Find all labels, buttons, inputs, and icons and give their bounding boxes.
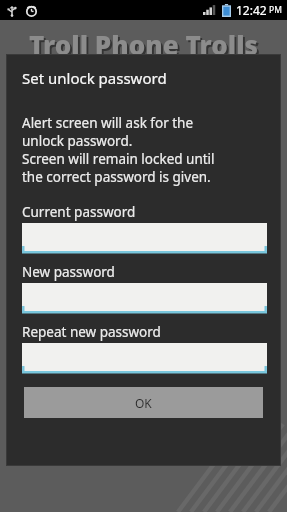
button[interactable]: Current password [22,223,267,254]
button[interactable]: New password [22,283,267,314]
staticText: the correct password is given. [22,168,211,186]
staticText: Current password [22,203,136,221]
staticText: Set unlock password [22,68,167,88]
staticText: Alert screen will ask for the [22,114,194,132]
button[interactable]: Repeat new password [22,343,267,374]
staticText: Troll Phone Trolls [31,29,261,64]
staticText: New password [22,263,115,281]
staticText: PM [269,4,282,16]
staticText: Repeat new password [22,323,161,341]
staticText: 12:42 [236,2,267,18]
staticText: Screen will remain locked until [22,150,215,168]
staticText: OK [135,395,152,411]
button[interactable]: OK [24,387,263,418]
staticText: unlock password. [22,132,133,150]
staticText: Troll Phone Trolls [29,27,259,62]
